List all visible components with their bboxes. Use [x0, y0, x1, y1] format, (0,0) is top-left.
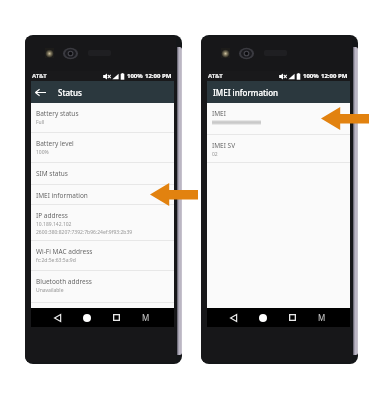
staticText: Full	[36, 119, 45, 126]
staticText: AT&T	[32, 72, 47, 80]
staticText: M	[142, 312, 150, 323]
staticText: AT&T	[208, 72, 223, 80]
staticText: Wi-Fi MAC address	[36, 247, 93, 256]
staticText: 12:00 PM	[321, 72, 348, 80]
staticText: Battery status	[36, 109, 79, 118]
button[interactable]: IMEI information	[31, 185, 174, 204]
staticText: Battery level	[36, 139, 74, 148]
button[interactable]: Wi-Fi MAC address	[31, 241, 174, 270]
button[interactable]: IMEI	[207, 103, 350, 134]
staticText: IMEI information	[213, 87, 279, 98]
staticText: M	[318, 312, 326, 323]
button[interactable]: IP address	[31, 205, 174, 240]
button[interactable]: Back	[32, 81, 49, 103]
staticText: 02	[212, 151, 218, 158]
button[interactable]: Recent apps	[107, 308, 125, 327]
button[interactable]: Home	[78, 308, 96, 327]
staticText: IMEI SV	[212, 141, 236, 150]
staticText: IP address	[36, 211, 68, 220]
button[interactable]: Battery status	[31, 103, 174, 132]
button[interactable]: Back	[224, 308, 242, 327]
button[interactable]: SIM status	[31, 163, 174, 184]
staticText: Unavailable	[36, 287, 64, 294]
button[interactable]: Menu	[313, 308, 331, 327]
button[interactable]: Recent apps	[283, 308, 301, 327]
staticText: fc:2d:5e:63:5a:9d	[36, 257, 76, 264]
staticText: 100%	[303, 72, 319, 80]
button[interactable]: Home	[254, 308, 272, 327]
staticText: IMEI information	[36, 191, 88, 200]
staticText: 10.189.142.102	[36, 221, 72, 228]
staticText: 100%	[36, 149, 49, 156]
staticText: 12:00 PM	[145, 72, 172, 80]
staticText: 2600:380:8207:7392:7b96:24ef:9f93:2b39	[36, 229, 133, 236]
button[interactable]: IMEI SV	[207, 135, 350, 162]
staticText: Status	[58, 87, 83, 98]
staticText: SIM status	[36, 169, 68, 178]
staticText: IMEI	[212, 109, 226, 118]
staticText: Bluetooth address	[36, 277, 92, 286]
button[interactable]: Bluetooth address	[31, 271, 174, 302]
button[interactable]: Battery level	[31, 133, 174, 162]
staticText: 100%	[127, 72, 143, 80]
button[interactable]: Back	[48, 308, 66, 327]
button[interactable]: Menu	[137, 308, 155, 327]
